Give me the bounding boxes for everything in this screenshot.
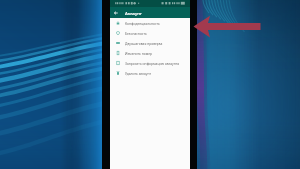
button[interactable]: Удалить аккаунт [110, 68, 190, 78]
staticText: Аккаунт [125, 10, 142, 16]
staticText: Конфиденциальность [125, 21, 160, 25]
staticText: Безопасность [125, 31, 147, 35]
button[interactable]: Изменить номер [110, 48, 190, 58]
staticText: Двухшаговая проверка [125, 41, 163, 45]
staticText: Изменить номер [125, 51, 153, 55]
button[interactable]: Двухшаговая проверка [110, 38, 190, 48]
staticText: Удалить аккаунт [125, 71, 152, 75]
button[interactable]: Безопасность [110, 28, 190, 38]
staticText: Запросить информацию аккаунта [125, 61, 180, 65]
button[interactable]: Конфиденциальность [110, 18, 190, 28]
button[interactable]: Back [110, 7, 121, 18]
button[interactable]: Запросить информацию аккаунта [110, 58, 190, 68]
